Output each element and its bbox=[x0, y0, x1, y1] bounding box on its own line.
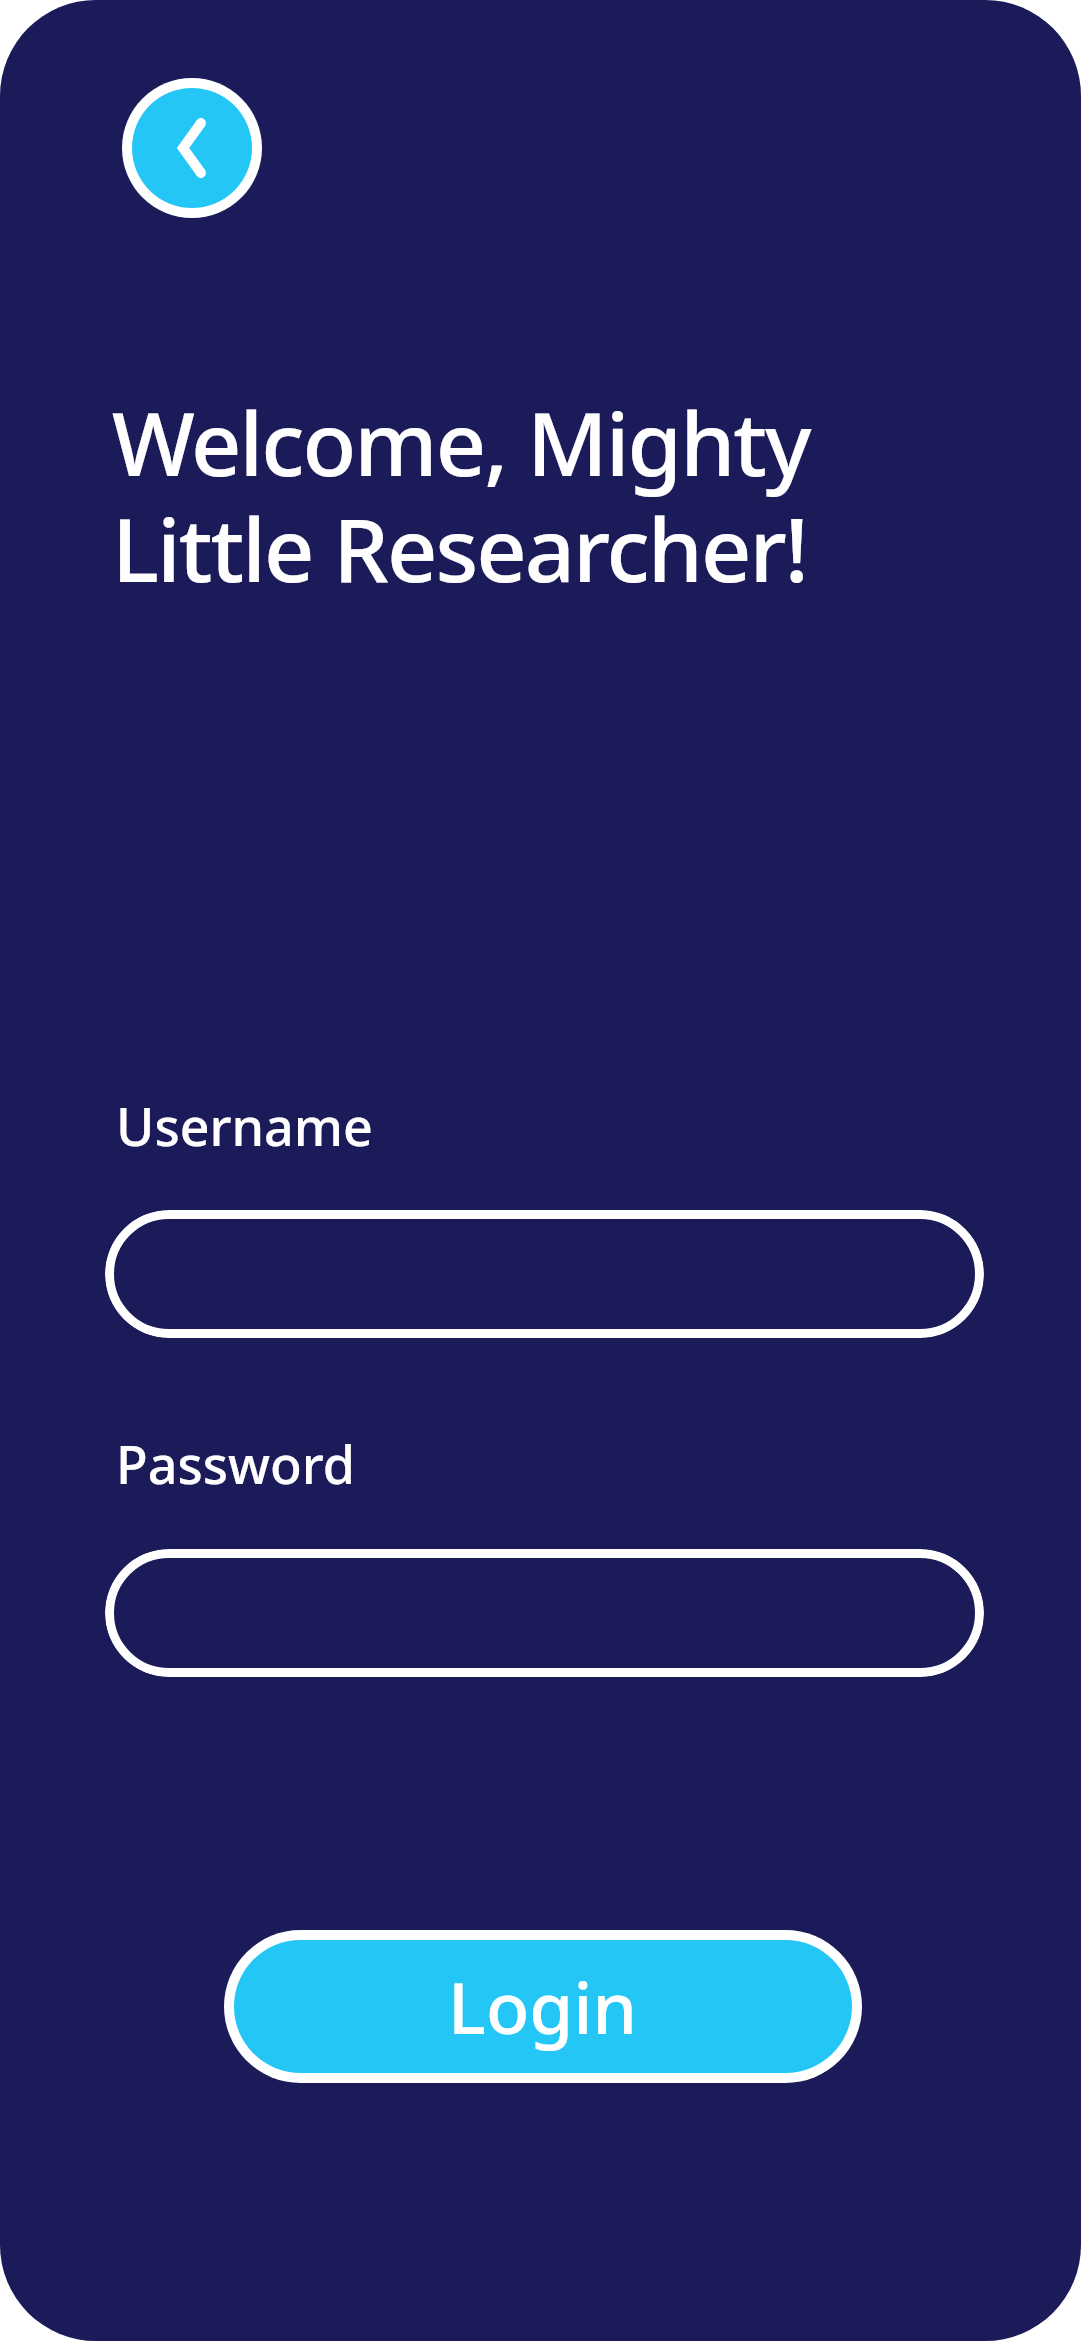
staticText: Password bbox=[116, 1428, 355, 1499]
button[interactable] bbox=[105, 1549, 984, 1677]
button[interactable] bbox=[132, 88, 252, 208]
staticText: Login bbox=[448, 1958, 638, 2055]
staticText: Username bbox=[116, 1090, 373, 1161]
button[interactable]: Login bbox=[234, 1940, 852, 2073]
staticText: Welcome, Mighty Little Researcher! bbox=[112, 382, 810, 608]
button[interactable] bbox=[105, 1210, 984, 1338]
